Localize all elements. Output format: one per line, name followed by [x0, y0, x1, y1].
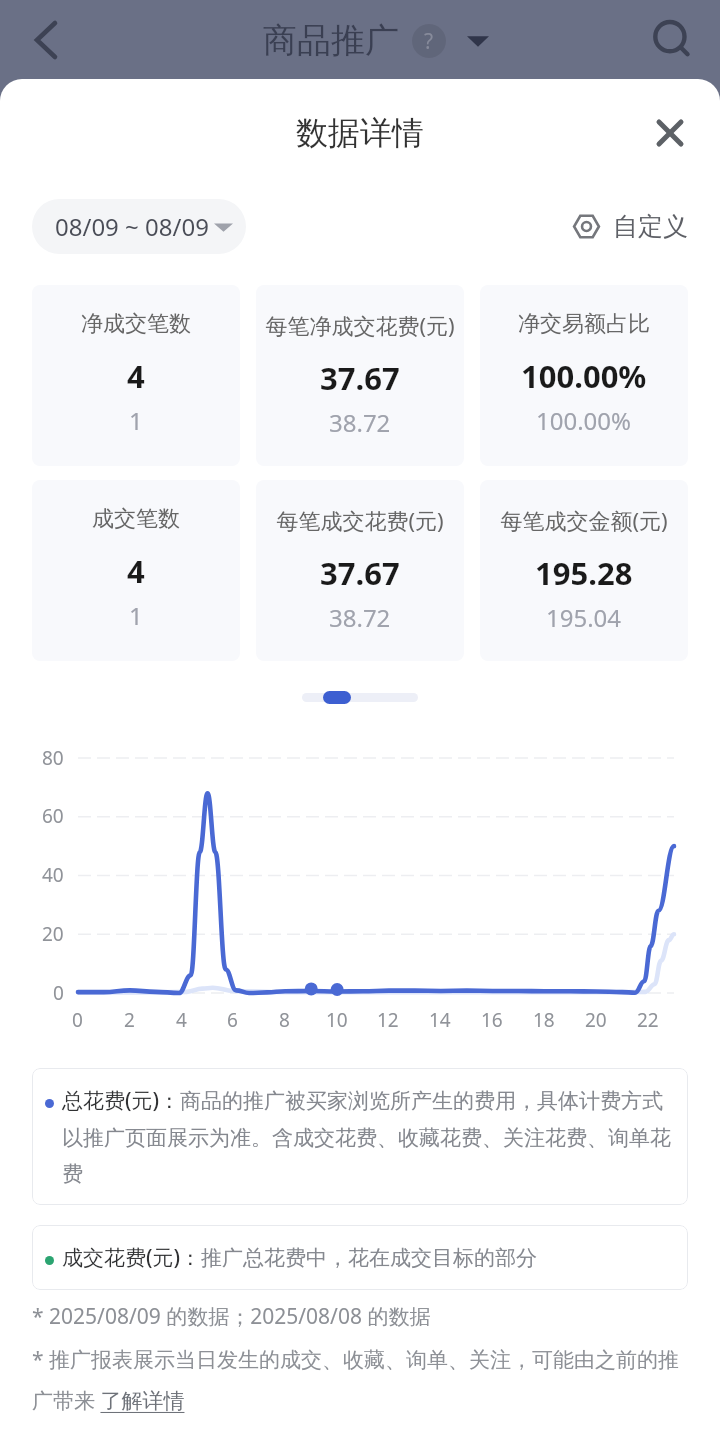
staticText: 20 — [585, 1007, 607, 1033]
staticText: 4 — [127, 550, 145, 592]
button[interactable]: 自定义 — [573, 205, 688, 248]
staticText: 195.28 — [535, 552, 633, 594]
staticText: 商品推广 — [263, 19, 399, 62]
staticText: 0 — [53, 980, 64, 1006]
button[interactable]: Back — [0, 0, 92, 80]
button[interactable]: 08/09 ~ 08/09 — [32, 199, 246, 254]
button[interactable]: 每笔成交金额(元) — [480, 480, 688, 661]
staticText: 37.67 — [320, 357, 400, 399]
staticText: 净成交笔数 — [81, 310, 191, 338]
staticText: 0 — [72, 1007, 83, 1033]
staticText: * 2025/08/09 的数据；2025/08/08 的数据 — [32, 1302, 431, 1331]
button[interactable]: 成交花费(元)：推广总花费中，花在成交目标的部分 — [32, 1225, 688, 1290]
staticText: 2 — [124, 1007, 135, 1033]
button[interactable]: 每笔净成交花费(元) — [256, 285, 464, 466]
button[interactable]: 净交易额占比 — [480, 285, 688, 466]
staticText: 成交笔数 — [92, 505, 180, 533]
staticText: 38.72 — [329, 601, 391, 634]
button[interactable]: Close — [648, 111, 692, 155]
staticText: 数据详情 — [296, 113, 424, 153]
staticText: 22 — [637, 1007, 659, 1033]
staticText: 净交易额占比 — [518, 310, 650, 338]
staticText: 20 — [42, 921, 64, 947]
button[interactable]: 净成交笔数 — [32, 285, 240, 466]
staticText: 16 — [481, 1007, 503, 1033]
staticText: 08/09 ~ 08/09 — [55, 210, 209, 243]
staticText: 60 — [42, 803, 64, 829]
staticText: * 推广报表展示当日发生的成交、收藏、询单、关注，可能由之前的推广带来 了解详情 — [32, 1345, 688, 1414]
button[interactable]: 总花费(元)：商品的推广被买家浏览所产生的费用，具体计费方式以推广页面展示为准。… — [32, 1068, 688, 1205]
staticText: 12 — [377, 1007, 399, 1033]
staticText: 自定义 — [613, 211, 688, 242]
staticText: 4 — [176, 1007, 187, 1033]
staticText: 40 — [42, 862, 64, 888]
staticText: 总花费(元)：商品的推广被买家浏览所产生的费用，具体计费方式以推广页面展示为准。… — [62, 1086, 678, 1187]
staticText: 10 — [326, 1007, 348, 1033]
button[interactable]: Search — [624, 0, 720, 80]
staticText: 每笔成交金额(元) — [500, 505, 668, 535]
button[interactable]: 成交笔数 — [32, 480, 240, 661]
staticText: 100.00% — [536, 404, 632, 437]
staticText: 1 — [129, 404, 143, 437]
staticText: 4 — [127, 355, 145, 397]
staticText: 38.72 — [329, 406, 391, 439]
button[interactable]: 每笔成交花费(元) — [256, 480, 464, 661]
staticText: 14 — [429, 1007, 451, 1033]
staticText: 6 — [227, 1007, 238, 1033]
staticText: 1 — [129, 599, 143, 632]
staticText: 每笔成交花费(元) — [276, 505, 444, 535]
staticText: 18 — [533, 1007, 555, 1033]
staticText: 100.00% — [521, 355, 647, 397]
staticText: 8 — [279, 1007, 290, 1033]
staticText: 80 — [42, 745, 64, 771]
staticText: 成交花费(元)：推广总花费中，花在成交目标的部分 — [62, 1243, 538, 1272]
staticText: 37.67 — [320, 552, 400, 594]
staticText: 195.04 — [546, 601, 622, 634]
staticText: ? — [424, 27, 434, 56]
staticText: 每笔净成交花费(元) — [265, 310, 455, 340]
